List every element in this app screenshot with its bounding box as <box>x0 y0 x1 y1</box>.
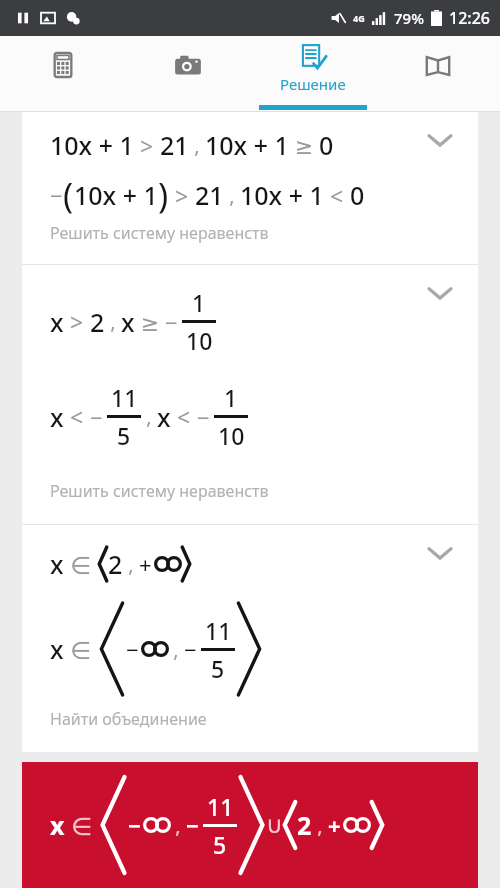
staticText: 1 <box>224 382 238 413</box>
button[interactable]: Expand <box>418 118 462 162</box>
staticText: 11 <box>207 791 234 822</box>
staticText: ∈ <box>65 809 99 842</box>
staticText: 0 <box>319 128 334 162</box>
staticText: − <box>128 810 141 840</box>
button[interactable]: x <box>22 525 478 752</box>
staticText: , <box>170 812 186 839</box>
staticText: < <box>324 180 350 211</box>
staticText: > <box>169 180 195 211</box>
staticText: 5 <box>117 420 131 451</box>
staticText: x <box>50 632 64 666</box>
staticText: 10x + 1 <box>74 178 158 212</box>
staticText: 2 <box>297 808 312 842</box>
staticText: 2 <box>90 305 105 339</box>
button[interactable]: Expand <box>418 271 462 315</box>
staticText: , <box>312 812 328 839</box>
staticText: Решить систему неравенств <box>50 222 269 244</box>
button[interactable]: Book <box>375 36 500 112</box>
staticText: 79% <box>394 8 424 28</box>
staticText: 4G <box>353 12 365 24</box>
staticText: < <box>64 401 90 432</box>
staticText: 5 <box>213 829 227 860</box>
staticText: , <box>224 182 240 209</box>
staticText: > <box>64 306 90 337</box>
button[interactable]: x <box>22 762 478 888</box>
staticText: Найти объединение <box>50 708 207 730</box>
staticText: ∈ <box>64 633 98 666</box>
button[interactable]: 10x + 1 <box>22 112 478 264</box>
staticText: 11 <box>205 615 232 646</box>
button[interactable]: Camera <box>125 36 250 112</box>
staticText: , <box>141 403 157 430</box>
staticText: ≥ <box>289 130 319 160</box>
staticText: x <box>50 305 64 339</box>
staticText: Решение <box>280 74 346 94</box>
staticText: , <box>123 551 139 578</box>
staticText: 0 <box>350 178 365 212</box>
staticText: 2 <box>108 547 123 581</box>
button[interactable]: Expand <box>418 531 462 575</box>
staticText: x <box>50 400 64 434</box>
staticText: > <box>134 130 160 161</box>
staticText: 12:26 <box>449 7 490 29</box>
staticText: − <box>50 180 63 210</box>
staticText: ( <box>63 172 74 218</box>
staticText: Решить систему неравенств <box>50 480 269 502</box>
staticText: 5 <box>211 653 225 684</box>
staticText: ≥ <box>135 307 165 337</box>
staticText: 10x + 1 <box>50 128 134 162</box>
button[interactable]: x <box>22 265 478 524</box>
staticText: 10 <box>186 325 213 356</box>
staticText: + <box>139 549 152 579</box>
staticText: − <box>90 402 103 432</box>
staticText: ∪ <box>266 812 283 839</box>
staticText: 21 <box>195 178 224 212</box>
staticText: , <box>168 636 184 663</box>
staticText: 21 <box>160 128 189 162</box>
staticText: , <box>105 308 121 335</box>
staticText: 10 <box>218 420 245 451</box>
staticText: x <box>50 547 64 581</box>
button[interactable]: Решение <box>250 36 375 112</box>
staticText: x <box>50 808 65 842</box>
button[interactable]: Calculator <box>0 36 125 112</box>
staticText: x <box>157 400 171 434</box>
staticText: x <box>121 305 135 339</box>
staticText: 10x + 1 <box>205 128 289 162</box>
staticText: − <box>126 634 139 664</box>
staticText: − <box>184 634 197 664</box>
staticText: 10x + 1 <box>240 178 324 212</box>
staticText: , <box>189 132 205 159</box>
staticText: + <box>328 810 341 840</box>
staticText: − <box>197 402 210 432</box>
staticText: ∈ <box>64 548 98 581</box>
staticText: 11 <box>111 382 138 413</box>
staticText: < <box>171 401 197 432</box>
staticText: − <box>165 307 178 337</box>
staticText: − <box>186 810 199 840</box>
staticText: 1 <box>192 287 206 318</box>
staticText: ) <box>158 172 169 218</box>
